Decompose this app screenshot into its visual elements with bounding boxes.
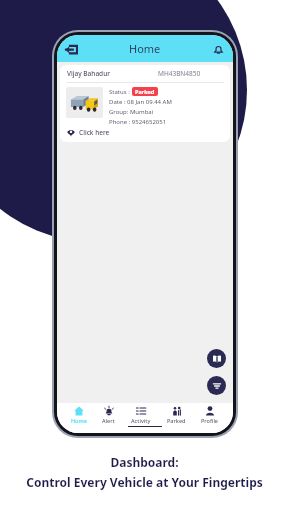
- staticText: Parked: [135, 88, 155, 95]
- staticText: Profile: [201, 417, 219, 424]
- button[interactable]: Profile: [199, 406, 221, 424]
- button[interactable]: Home: [69, 406, 89, 424]
- staticText: Parked: [167, 417, 186, 424]
- staticText: Alert: [102, 417, 115, 424]
- staticText: Activity: [131, 417, 151, 424]
- button[interactable]: Activity: [129, 406, 153, 424]
- staticText: Control Every Vehicle at Your Fingertips: [26, 474, 263, 490]
- staticText: Date : 08 Jan 09.44 AM: [109, 98, 172, 106]
- button[interactable]: Parked: [165, 406, 188, 424]
- staticText: Group: Mumbai: [109, 108, 154, 116]
- staticText: Status :: [109, 88, 132, 96]
- staticText: MH43BN4850: [158, 69, 201, 78]
- staticText: Click here: [79, 128, 110, 137]
- button[interactable]: Notifications: [209, 40, 227, 58]
- staticText: Dashboard:: [110, 454, 179, 470]
- button[interactable]: Back: [62, 40, 80, 58]
- staticText: Home: [129, 41, 161, 56]
- staticText: Home: [71, 417, 87, 424]
- button[interactable]: Map: [207, 349, 226, 368]
- button[interactable]: Click here: [67, 128, 230, 137]
- button[interactable]: Filter: [207, 376, 226, 395]
- staticText: Vijay Bahadur: [67, 69, 110, 78]
- button[interactable]: Vijay Bahadur: [60, 65, 230, 142]
- staticText: Phone : 9524652051: [109, 118, 167, 126]
- button[interactable]: Alert: [100, 406, 117, 424]
